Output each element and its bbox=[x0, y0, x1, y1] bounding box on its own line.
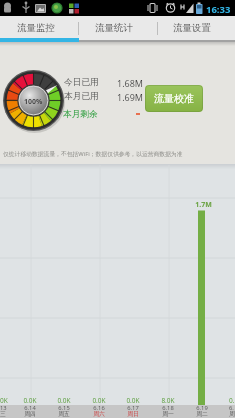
button[interactable]: 流量统计 bbox=[79, 16, 157, 42]
staticText: 本月已用 bbox=[64, 91, 99, 102]
staticText: 今日已用 bbox=[64, 77, 99, 88]
staticText: 1.69M bbox=[117, 91, 144, 103]
staticText: 6. bbox=[229, 404, 234, 412]
button[interactable]: 流量监控 bbox=[0, 16, 79, 42]
staticText: 1.68M bbox=[117, 77, 144, 89]
staticText: 周五 bbox=[58, 410, 70, 417]
staticText: 流量设置 bbox=[173, 22, 211, 34]
staticText: 流量统计 bbox=[95, 22, 133, 34]
staticText: 100% bbox=[24, 97, 43, 107]
staticText: 本月剩余 bbox=[63, 109, 98, 120]
staticText: 流量校准 bbox=[154, 92, 194, 105]
button[interactable]: 流量设置 bbox=[157, 16, 235, 42]
staticText: 0.0K bbox=[23, 396, 37, 405]
staticText: 16:33 bbox=[206, 3, 231, 16]
button[interactable]: 流量校准 bbox=[145, 85, 203, 112]
staticText: 0. bbox=[229, 396, 235, 405]
staticText: 6.15 bbox=[58, 404, 70, 412]
staticText: 0.0K bbox=[126, 396, 140, 405]
staticText: 6.18 bbox=[162, 404, 174, 412]
staticText: 周六 bbox=[93, 410, 105, 417]
staticText: 6.14 bbox=[24, 404, 36, 412]
staticText: 周四 bbox=[24, 410, 36, 417]
staticText: 0K bbox=[0, 396, 8, 405]
staticText: 流量监控 bbox=[17, 22, 55, 34]
staticText: 8.0K bbox=[161, 396, 175, 405]
staticText: 周一 bbox=[162, 410, 174, 417]
staticText: 三 bbox=[0, 410, 6, 417]
staticText: 6.17 bbox=[127, 404, 139, 412]
staticText: 1.7M bbox=[195, 200, 212, 210]
staticText: 0.0K bbox=[57, 396, 71, 405]
staticText: 周 bbox=[229, 410, 235, 417]
staticText: 0.0K bbox=[92, 396, 106, 405]
staticText: 13 bbox=[0, 404, 7, 412]
staticText: 6.16 bbox=[93, 404, 105, 412]
staticText: 仅统计移动数据流量，不包括WiFi；数据仅供参考，以运营商数据为准 bbox=[3, 150, 183, 158]
staticText: 6.19 bbox=[196, 404, 208, 412]
staticText: 周日 bbox=[127, 410, 139, 417]
staticText: 周二 bbox=[196, 410, 208, 417]
